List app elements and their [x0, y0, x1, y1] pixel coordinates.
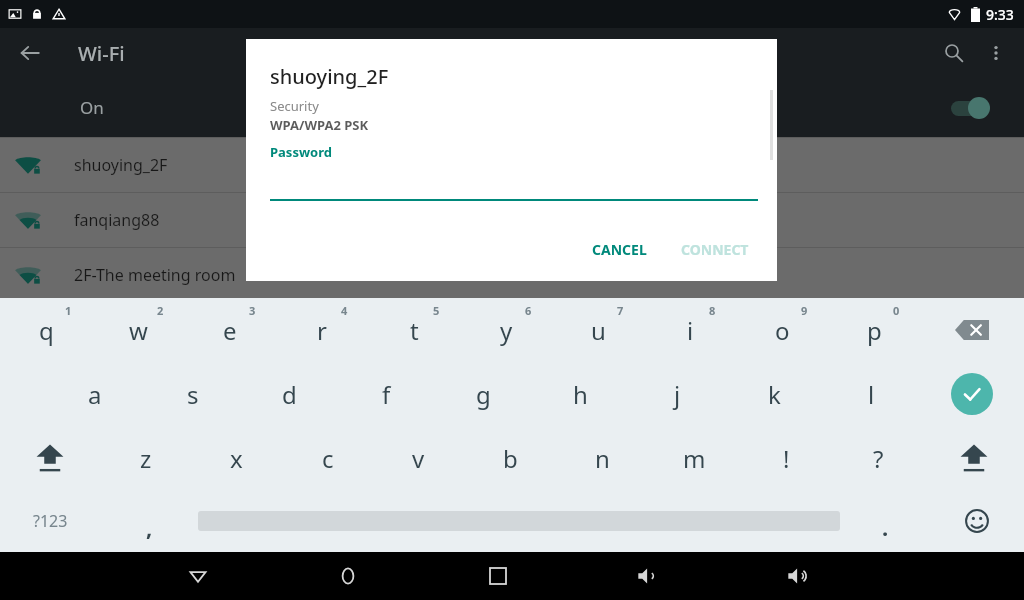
staticText: 6 [525, 303, 532, 318]
button[interactable]: Shift [924, 426, 1024, 490]
button[interactable]: n [556, 426, 648, 490]
button[interactable]: 9 [736, 298, 828, 362]
button[interactable]: CANCEL [580, 232, 659, 267]
staticText: q [39, 314, 54, 347]
button[interactable]: Recent apps [470, 552, 526, 600]
staticText: 2 [157, 303, 164, 318]
staticText: shuoying_2F [74, 154, 168, 176]
button[interactable]: 1 [0, 298, 92, 362]
staticText: f [382, 378, 391, 411]
button[interactable]: g [435, 362, 532, 426]
staticText: o [775, 314, 790, 347]
staticText: 9 [801, 303, 808, 318]
button[interactable]: 6 [460, 298, 552, 362]
button[interactable]: Search [932, 31, 976, 75]
button[interactable]: v [373, 426, 464, 490]
button[interactable]: 0 [828, 298, 920, 362]
staticText: 2F-The meeting room [74, 264, 236, 286]
staticText: h [573, 378, 588, 411]
staticText: 5 [433, 303, 440, 318]
staticText: l [868, 378, 875, 411]
staticText: g [476, 378, 491, 411]
button[interactable]: Wi-Fi toggle [946, 91, 998, 125]
button[interactable]: CONNECT [669, 232, 761, 267]
staticText: ?123 [33, 510, 68, 532]
staticText: 3 [249, 303, 256, 318]
button[interactable]: More options [974, 31, 1018, 75]
staticText: v [412, 442, 425, 475]
button[interactable]: Volume up [770, 552, 826, 600]
button[interactable]: Navigate up [10, 33, 50, 73]
staticText: i [687, 314, 694, 347]
staticText: k [768, 378, 781, 411]
button[interactable]: 2F-The meeting room [0, 248, 1024, 302]
staticText: Wi-Fi [78, 40, 125, 67]
button[interactable]: 7 [552, 298, 644, 362]
button[interactable]: l [823, 362, 920, 426]
button[interactable]: , [100, 490, 198, 552]
button[interactable]: ?123 [0, 490, 100, 552]
button[interactable]: Hide keyboard [170, 552, 226, 600]
staticText: d [282, 378, 297, 411]
staticText: y [500, 314, 513, 347]
button[interactable]: z [100, 426, 191, 490]
staticText: ? [873, 442, 884, 475]
button[interactable]: shuoying_2F [0, 138, 1024, 192]
button[interactable]: h [532, 362, 629, 426]
staticText: j [674, 378, 681, 411]
staticText: On [80, 96, 104, 119]
button[interactable]: Backspace [920, 298, 1024, 362]
button[interactable]: s [144, 362, 241, 426]
button[interactable]: 2 [92, 298, 184, 362]
staticText: n [595, 442, 610, 475]
button[interactable]: 4 [276, 298, 368, 362]
staticText: 8 [709, 303, 716, 318]
button[interactable]: Emoji [930, 490, 1024, 552]
staticText: , [146, 512, 153, 542]
staticText: c [322, 442, 334, 475]
staticText: 7 [617, 303, 624, 318]
staticText: a [88, 378, 102, 411]
button[interactable]: . [840, 490, 930, 552]
staticText: shuoying_2F [270, 63, 389, 90]
staticText: Security [270, 97, 319, 115]
staticText: ! [783, 442, 790, 475]
button[interactable]: Shift [0, 426, 100, 490]
staticText: . [882, 512, 889, 542]
button[interactable]: Volume down [620, 552, 676, 600]
staticText: z [140, 442, 152, 475]
staticText: CANCEL [592, 240, 647, 259]
button[interactable]: ! [740, 426, 832, 490]
button[interactable]: 5 [368, 298, 460, 362]
staticText: 9:33 [986, 5, 1014, 24]
button[interactable]: j [629, 362, 726, 426]
button[interactable]: x [191, 426, 282, 490]
staticText: m [683, 442, 706, 475]
staticText: 4 [341, 303, 348, 318]
button[interactable]: a [46, 362, 144, 426]
staticText: p [867, 314, 882, 347]
staticText: WPA/WPA2 PSK [270, 116, 369, 134]
staticText: fanqiang88 [74, 209, 160, 231]
staticText: Password [270, 143, 332, 161]
button[interactable]: 3 [184, 298, 276, 362]
button[interactable]: Space [198, 490, 840, 552]
button[interactable]: fanqiang88 [0, 193, 1024, 247]
button[interactable]: Home [320, 552, 376, 600]
button[interactable]: 8 [644, 298, 736, 362]
button[interactable]: c [282, 426, 373, 490]
staticText: e [223, 314, 237, 347]
button[interactable]: Enter [920, 362, 1024, 426]
button[interactable]: d [241, 362, 338, 426]
staticText: 0 [893, 303, 900, 318]
staticText: b [503, 442, 518, 475]
button[interactable]: k [726, 362, 823, 426]
button[interactable]: f [338, 362, 435, 426]
button[interactable]: m [648, 426, 740, 490]
staticText: u [591, 314, 606, 347]
staticText: w [129, 314, 148, 347]
staticText: x [230, 442, 243, 475]
button[interactable]: ? [832, 426, 924, 490]
button[interactable]: b [464, 426, 556, 490]
